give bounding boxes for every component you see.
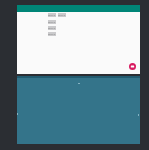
button[interactable]: BUTTON <box>48 26 56 30</box>
button[interactable]: BUTTON <box>48 32 56 36</box>
staticText: BUTTON <box>48 32 56 35</box>
button[interactable]: BUTTON <box>48 20 56 24</box>
button[interactable]: BUTTON <box>58 13 66 17</box>
staticText: BUTTON <box>58 13 66 16</box>
button[interactable]: BUTTON <box>48 13 56 17</box>
staticText: BUTTON <box>48 13 56 16</box>
button[interactable]: Send email <box>129 63 136 70</box>
staticText: BUTTON <box>48 26 56 29</box>
staticText: BUTTON <box>48 20 56 23</box>
